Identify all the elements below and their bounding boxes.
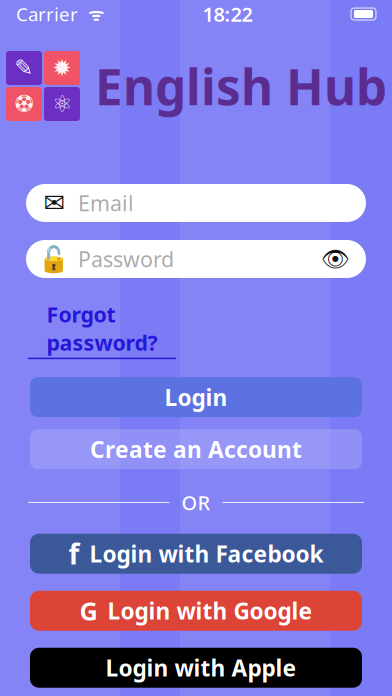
staticText: 👁︎	[321, 246, 350, 272]
button[interactable]: f	[30, 534, 362, 574]
staticText: Forgot password?	[46, 300, 157, 357]
staticText: ✉︎	[43, 189, 64, 217]
button[interactable]	[30, 648, 362, 688]
staticText: ✎	[14, 55, 33, 81]
staticText: Login with Google	[107, 596, 312, 626]
staticText: Login	[164, 382, 227, 412]
staticText: Email	[78, 189, 134, 217]
staticText: Password	[78, 245, 174, 273]
staticText: English Hub	[95, 53, 387, 119]
staticText: ᯤ	[78, 2, 104, 25]
staticText: Login with Facebook	[89, 539, 323, 569]
staticText: ⚛︎	[52, 91, 72, 117]
staticText: Create an Account	[90, 434, 302, 464]
staticText: 🔓	[38, 244, 70, 273]
staticText: Carrier	[16, 2, 78, 26]
staticText: 18:22	[202, 1, 252, 27]
button[interactable]: G	[30, 591, 362, 631]
staticText: ✹	[52, 55, 71, 81]
button[interactable]: Forgot password?	[28, 300, 176, 359]
button[interactable]: Login	[30, 377, 362, 417]
staticText: f	[68, 535, 79, 572]
staticText: OR	[181, 489, 210, 516]
staticText: G	[79, 594, 97, 627]
button[interactable]: Create an Account	[30, 429, 362, 469]
staticText: ⚽︎	[14, 93, 33, 115]
staticText: Login with Apple	[105, 653, 296, 683]
